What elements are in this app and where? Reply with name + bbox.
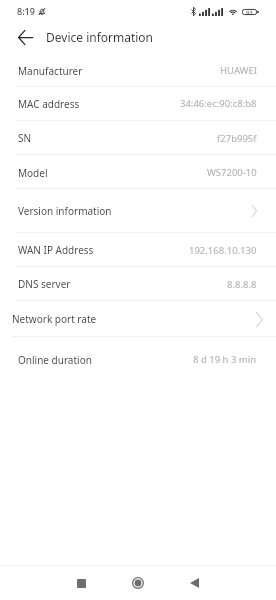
staticText: Device information	[46, 29, 154, 45]
staticText: Manufacturer	[18, 64, 83, 78]
button[interactable]: Model	[0, 155, 276, 190]
staticText: Version information	[18, 204, 112, 218]
button[interactable]: Recent apps	[63, 571, 99, 595]
staticText: WS7200-10	[207, 166, 257, 179]
staticText: SN	[18, 131, 32, 145]
button[interactable]: Network port rate	[0, 301, 276, 337]
button[interactable]: DNS server	[0, 267, 276, 301]
staticText: DNS server	[18, 277, 71, 291]
staticText: 34:46:ec:90:c8:b8	[180, 97, 257, 110]
button[interactable]: Home	[120, 571, 156, 595]
button[interactable]: Online duration	[0, 337, 276, 382]
staticText: 8.8.8.8	[227, 278, 257, 291]
staticText: Model	[18, 166, 48, 180]
button[interactable]: Version information	[0, 189, 276, 232]
staticText: Network port rate	[12, 312, 97, 326]
button[interactable]: MAC address	[0, 87, 276, 120]
button[interactable]: Manufacturer	[0, 54, 276, 87]
staticText: 192.168.10.130	[189, 244, 257, 257]
staticText: 8 d 19 h 3 min	[193, 353, 257, 366]
staticText: f27b995f	[217, 132, 257, 145]
button[interactable]: Back	[176, 571, 212, 595]
staticText: HUAWEI	[220, 64, 257, 77]
staticText: Online duration	[18, 353, 92, 367]
staticText: WAN IP Address	[18, 243, 94, 257]
button[interactable]: Back	[11, 23, 39, 51]
staticText: 8:19	[17, 5, 35, 17]
button[interactable]: SN	[0, 121, 276, 155]
staticText: MAC address	[18, 97, 80, 111]
button[interactable]: WAN IP Address	[0, 233, 276, 267]
staticText: 93	[246, 9, 253, 15]
